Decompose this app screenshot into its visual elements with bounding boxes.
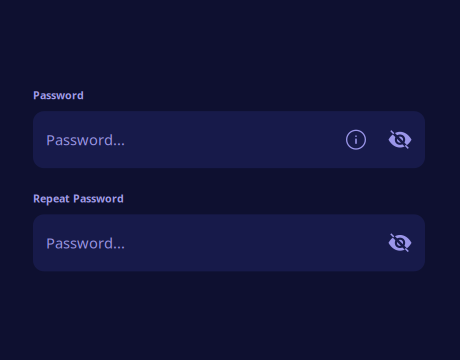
staticText: Password... [46, 130, 125, 149]
staticText: Repeat Password [33, 191, 124, 205]
button[interactable]: Show password [387, 112, 413, 168]
staticText: Password... [46, 233, 125, 253]
button[interactable]: Show password [387, 215, 413, 271]
staticText: Password [33, 88, 84, 102]
button[interactable]: Password requirements [343, 112, 369, 168]
